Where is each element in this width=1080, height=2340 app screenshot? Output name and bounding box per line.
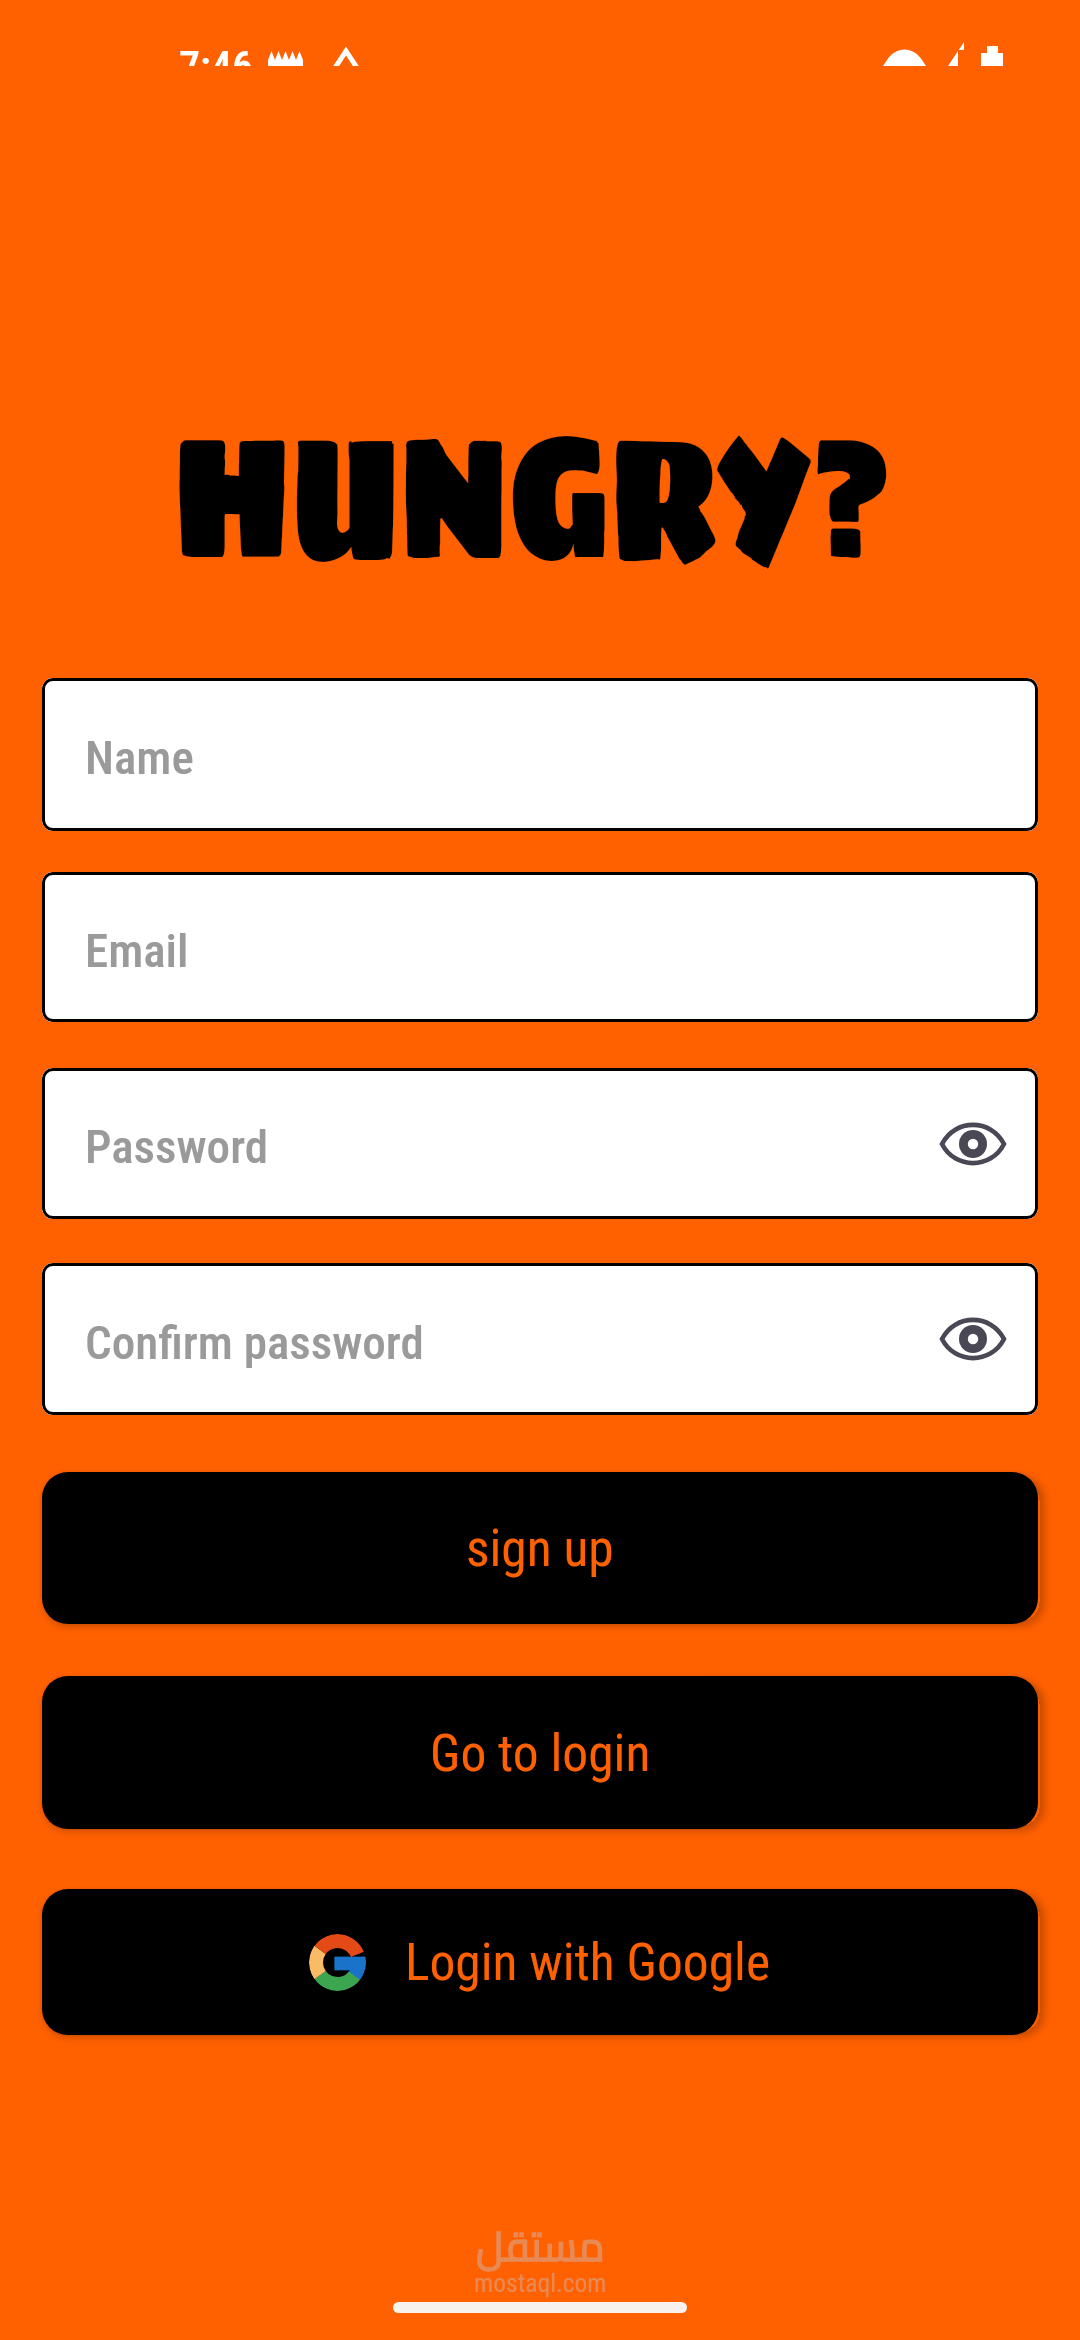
staticText: Password [85, 1119, 269, 1174]
staticText: sign up [466, 1518, 614, 1578]
button[interactable]: Go to login [42, 1676, 1038, 1829]
button[interactable]: Login with Google [42, 1889, 1038, 2035]
button[interactable]: Show password [936, 1302, 1010, 1376]
staticText: Go to login [430, 1723, 651, 1783]
staticText: 7:46 [179, 42, 253, 66]
staticText: مستقل [476, 2208, 605, 2285]
staticText: HUNGRY? [141, 350, 927, 640]
button[interactable]: Password [42, 1068, 1038, 1219]
staticText: Email [85, 923, 189, 978]
button[interactable]: sign up [42, 1472, 1038, 1624]
staticText: Confirm password [85, 1315, 424, 1370]
staticText: Name [85, 730, 194, 785]
staticText: mostaql.com [474, 2268, 607, 2298]
button[interactable]: Email [42, 872, 1038, 1022]
button[interactable]: Name [42, 678, 1038, 831]
button[interactable]: Confirm password [42, 1263, 1038, 1415]
staticText: Login with Google [405, 1932, 771, 1992]
button[interactable]: Show password [936, 1107, 1010, 1181]
